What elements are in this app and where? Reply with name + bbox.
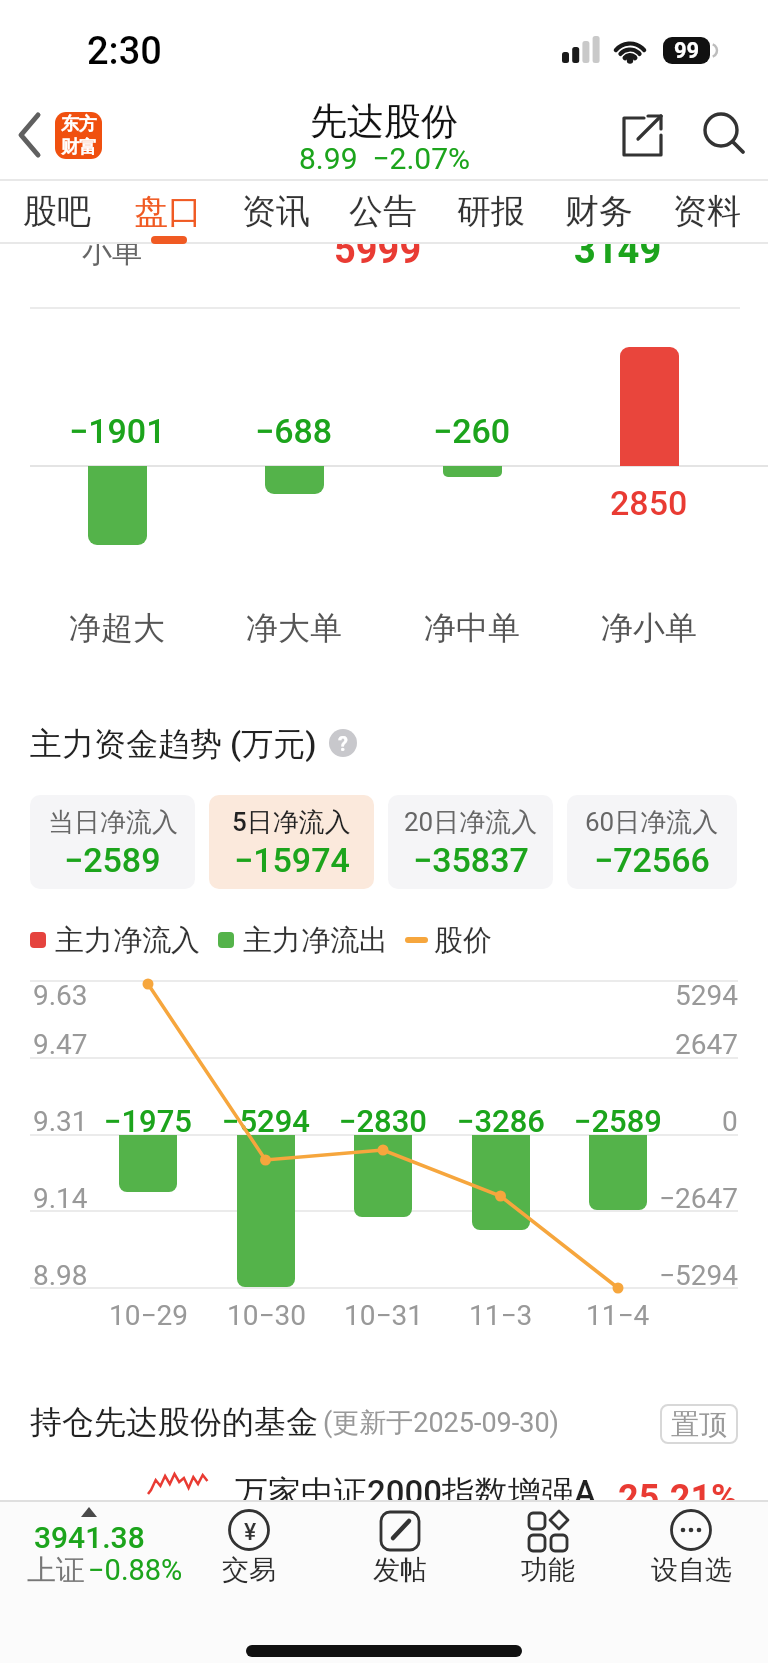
staticText: 9.47 [33, 1028, 88, 1061]
button[interactable] [10, 1502, 180, 1597]
staticText: −2647 [659, 1182, 738, 1215]
staticText: 净超大 [69, 608, 165, 648]
staticText: 10−30 [227, 1299, 306, 1332]
staticText: 净中单 [424, 608, 520, 648]
staticText: 资料 [673, 190, 741, 233]
button[interactable] [700, 110, 748, 158]
staticText: (更新于2025-09-30) [323, 1406, 559, 1440]
button[interactable]: 20日净流入 [388, 795, 553, 889]
staticText: −1901 [69, 411, 166, 451]
button[interactable]: ? [329, 729, 357, 757]
staticText: 万家中证2000指数增强A [235, 1472, 596, 1514]
staticText: −2589 [574, 1103, 662, 1139]
staticText: −5294 [659, 1259, 738, 1292]
staticText: −688 [255, 411, 333, 451]
staticText: −15974 [234, 840, 350, 880]
staticText: −1975 [104, 1103, 192, 1139]
staticText: −2830 [339, 1103, 427, 1139]
staticText: 研报 [457, 190, 525, 233]
staticText: 9.63 [33, 979, 88, 1012]
staticText: 当日净流入 [48, 806, 178, 839]
button[interactable]: 资料 [447, 177, 768, 245]
staticText: 99 [674, 38, 700, 64]
staticText: 0 [722, 1105, 738, 1138]
button[interactable]: 公告 [123, 177, 643, 245]
button[interactable] [16, 112, 44, 160]
staticText: −35837 [413, 840, 529, 880]
staticText: 11−4 [586, 1299, 650, 1332]
staticText: 盘口 [134, 190, 202, 233]
button[interactable] [488, 1504, 608, 1596]
staticText: 净大单 [246, 608, 342, 648]
staticText: 东方 [61, 113, 97, 136]
staticText: 主力净流入 [55, 922, 200, 959]
button[interactable] [189, 1504, 309, 1596]
staticText: 置顶 [671, 1407, 727, 1442]
button[interactable]: 研报 [231, 177, 751, 245]
staticText: 发帖 [373, 1553, 427, 1587]
staticText: 5日净流入 [232, 806, 351, 839]
staticText: 小单 [82, 233, 142, 271]
staticText: 财富 [61, 136, 97, 159]
staticText: 8.98 [33, 1259, 88, 1292]
staticText: 主力资金趋势 (万元) [30, 724, 317, 764]
staticText: 净小单 [601, 608, 697, 648]
staticText: 资讯 [242, 190, 310, 233]
staticText: 公告 [349, 190, 417, 233]
button[interactable]: 资讯 [16, 177, 536, 245]
staticText: 5294 [675, 979, 738, 1012]
staticText: 2:30 [87, 29, 162, 74]
staticText: 股吧 [23, 190, 91, 233]
staticText: 功能 [521, 1553, 575, 1587]
staticText: 9.14 [33, 1182, 88, 1215]
button[interactable]: 盘口 [0, 177, 428, 245]
staticText: 60日净流入 [585, 806, 719, 839]
staticText: −260 [433, 411, 511, 451]
staticText: 10−31 [344, 1299, 423, 1332]
staticText: −5294 [222, 1103, 310, 1139]
staticText: 8.99 −2.07% [299, 141, 470, 176]
button[interactable]: 5日净流入 [209, 795, 374, 889]
staticText: 9.31 [33, 1105, 88, 1138]
staticText: 股价 [434, 922, 492, 959]
staticText: 先达股份 [310, 98, 458, 145]
button[interactable]: 财务 [339, 177, 768, 245]
staticText: 设自选 [651, 1553, 732, 1587]
button[interactable]: 置顶 [660, 1404, 738, 1444]
button[interactable]: 东方 [55, 112, 102, 159]
staticText: ¥ [244, 1519, 257, 1545]
button[interactable]: 当日净流入 [30, 795, 195, 889]
staticText: −72566 [594, 840, 710, 880]
button[interactable]: 60日净流入 [567, 795, 737, 889]
staticText: 上证 [27, 1552, 85, 1589]
staticText: 11−3 [469, 1299, 533, 1332]
staticText: 10−29 [109, 1299, 188, 1332]
button[interactable] [340, 1504, 460, 1596]
staticText: 5999 [334, 228, 422, 273]
staticText: −2589 [64, 840, 161, 880]
button[interactable] [140, 1468, 740, 1500]
staticText: 20日净流入 [404, 806, 538, 839]
staticText: 主力净流出 [243, 922, 388, 959]
button[interactable] [618, 110, 668, 160]
button[interactable]: 股吧 [0, 177, 317, 245]
button[interactable] [631, 1504, 751, 1596]
staticText: 2647 [675, 1028, 738, 1061]
staticText: 财务 [565, 190, 633, 233]
staticText: 3941.38 [34, 1520, 145, 1555]
staticText: −3286 [457, 1103, 545, 1139]
staticText: 2850 [610, 483, 688, 523]
staticText: −0.88% [88, 1553, 183, 1587]
staticText: 交易 [222, 1553, 276, 1587]
staticText: 持仓先达股份的基金 [30, 1402, 318, 1442]
staticText: 25.21% [618, 1477, 738, 1519]
staticText: ? [338, 732, 348, 755]
staticText: 3149 [574, 228, 662, 273]
